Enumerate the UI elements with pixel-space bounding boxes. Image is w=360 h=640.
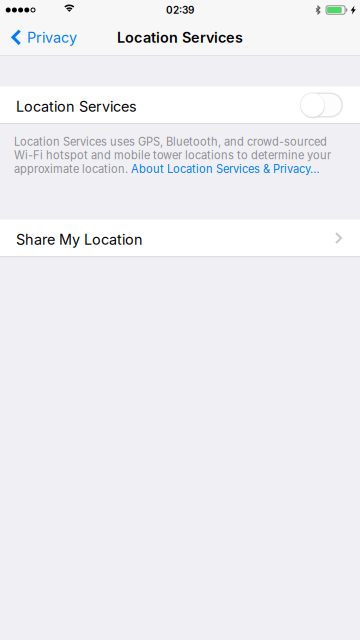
button[interactable]: Location Services bbox=[0, 86, 360, 123]
staticText: Location Services bbox=[117, 29, 243, 46]
button[interactable]: About Location Services & Privacy… bbox=[131, 162, 320, 176]
staticText: Location Services uses GPS, Bluetooth, a… bbox=[14, 135, 327, 148]
staticText: 02:39 bbox=[166, 4, 194, 16]
staticText: Privacy bbox=[27, 29, 77, 46]
button[interactable]: Share My Location bbox=[0, 220, 360, 257]
staticText: Location Services bbox=[16, 98, 137, 115]
staticText: About Location Services & Privacy… bbox=[131, 162, 320, 176]
staticText: Share My Location bbox=[16, 231, 143, 248]
staticText: approximate location. bbox=[14, 162, 131, 176]
button[interactable]: Privacy bbox=[0, 20, 85, 55]
staticText: Wi-Fi hotspot and mobile tower locations… bbox=[14, 149, 331, 162]
